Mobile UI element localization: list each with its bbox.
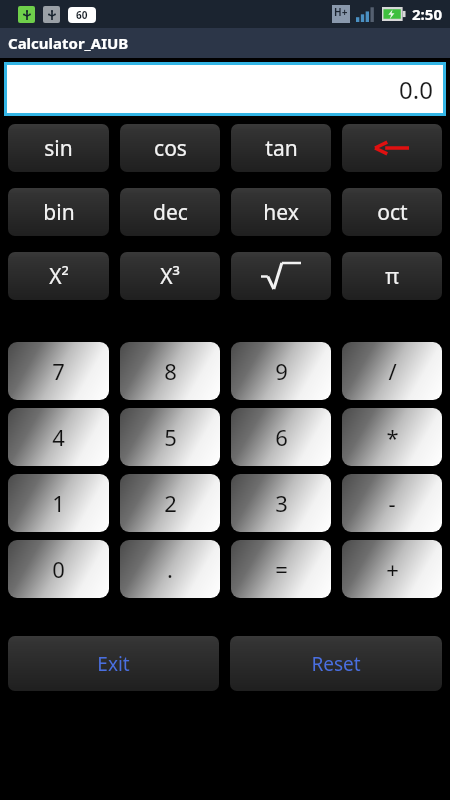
- staticText: X³: [160, 262, 180, 291]
- button[interactable]: 5: [120, 408, 220, 466]
- button[interactable]: Exit: [8, 636, 219, 691]
- staticText: Exit: [97, 651, 130, 677]
- button[interactable]: oct: [342, 188, 442, 236]
- staticText: H+: [334, 5, 348, 19]
- button[interactable]: tan: [231, 124, 331, 172]
- staticText: 3: [275, 488, 288, 518]
- staticText: 0.0: [399, 73, 433, 106]
- staticText: 2: [164, 488, 177, 518]
- button[interactable]: Square root: [231, 252, 331, 300]
- staticText: 60: [76, 8, 88, 22]
- button[interactable]: 3: [231, 474, 331, 532]
- button[interactable]: 2: [120, 474, 220, 532]
- staticText: 7: [52, 356, 65, 386]
- button[interactable]: bin: [8, 188, 109, 236]
- staticText: 4: [52, 422, 65, 452]
- button[interactable]: +: [342, 540, 442, 598]
- staticText: +: [386, 554, 399, 584]
- button[interactable]: π: [342, 252, 442, 300]
- staticText: 6: [275, 422, 288, 452]
- staticText: hex: [263, 198, 299, 227]
- staticText: /: [388, 356, 397, 386]
- button[interactable]: 8: [120, 342, 220, 400]
- button[interactable]: cos: [120, 124, 220, 172]
- staticText: -: [388, 488, 396, 518]
- button[interactable]: X²: [8, 252, 109, 300]
- button[interactable]: hex: [231, 188, 331, 236]
- staticText: π: [385, 262, 399, 291]
- staticText: cos: [154, 134, 187, 163]
- staticText: sin: [44, 134, 73, 163]
- button[interactable]: -: [342, 474, 442, 532]
- staticText: dec: [153, 198, 188, 227]
- button[interactable]: 7: [8, 342, 109, 400]
- staticText: oct: [377, 198, 408, 227]
- button[interactable]: X³: [120, 252, 220, 300]
- button[interactable]: *: [342, 408, 442, 466]
- staticText: bin: [43, 198, 75, 227]
- button[interactable]: 6: [231, 408, 331, 466]
- staticText: 1: [52, 488, 65, 518]
- staticText: 9: [275, 356, 288, 386]
- staticText: 5: [164, 422, 177, 452]
- staticText: *: [386, 422, 399, 452]
- staticText: tan: [265, 134, 298, 163]
- button[interactable]: 9: [231, 342, 331, 400]
- staticText: 2:50: [412, 4, 442, 24]
- staticText: 0: [52, 554, 65, 584]
- button[interactable]: Backspace: [342, 124, 442, 172]
- button[interactable]: dec: [120, 188, 220, 236]
- button[interactable]: /: [342, 342, 442, 400]
- staticText: X²: [49, 262, 69, 291]
- button[interactable]: =: [231, 540, 331, 598]
- button[interactable]: Reset: [230, 636, 442, 691]
- staticText: Calculator_AIUB: [8, 33, 129, 53]
- staticText: =: [275, 554, 288, 584]
- staticText: .: [167, 554, 173, 584]
- button[interactable]: 0: [8, 540, 109, 598]
- button[interactable]: .: [120, 540, 220, 598]
- staticText: Reset: [311, 651, 361, 677]
- button[interactable]: sin: [8, 124, 109, 172]
- staticText: 8: [164, 356, 177, 386]
- button[interactable]: 4: [8, 408, 109, 466]
- button[interactable]: 1: [8, 474, 109, 532]
